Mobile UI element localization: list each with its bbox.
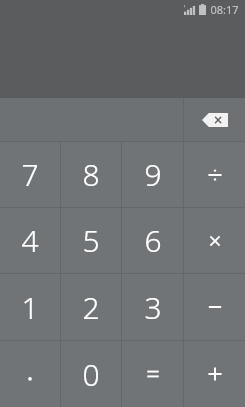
button[interactable]: Delete xyxy=(184,98,245,141)
staticText: 1 xyxy=(21,287,39,328)
staticText: 4 xyxy=(21,220,39,261)
staticText: 6 xyxy=(144,220,162,261)
button[interactable]: Divide xyxy=(184,142,245,207)
button[interactable]: Subtract xyxy=(184,274,245,340)
staticText: 7 xyxy=(21,154,39,195)
staticText: 8 xyxy=(82,154,100,195)
button[interactable]: 9 xyxy=(122,142,183,207)
button[interactable]: 0 xyxy=(61,341,121,407)
staticText: 9 xyxy=(144,154,162,195)
staticText: 5 xyxy=(82,220,100,261)
button[interactable]: 7 xyxy=(0,142,60,207)
button[interactable]: 5 xyxy=(61,208,121,273)
button[interactable]: Decimal point xyxy=(0,341,60,407)
button[interactable]: Add xyxy=(184,341,245,407)
button[interactable]: 3 xyxy=(122,274,183,340)
button[interactable]: 2 xyxy=(61,274,121,340)
button[interactable]: 6 xyxy=(122,208,183,273)
staticText: 0 xyxy=(82,354,100,395)
button[interactable]: 8 xyxy=(61,142,121,207)
button[interactable]: 4 xyxy=(0,208,60,273)
button[interactable]: 1 xyxy=(0,274,60,340)
staticText: 2 xyxy=(82,287,100,328)
staticText: 3 xyxy=(144,287,162,328)
staticText: 08:17 xyxy=(210,2,239,17)
button[interactable]: Equals xyxy=(122,341,183,407)
button[interactable]: Multiply xyxy=(184,208,245,273)
